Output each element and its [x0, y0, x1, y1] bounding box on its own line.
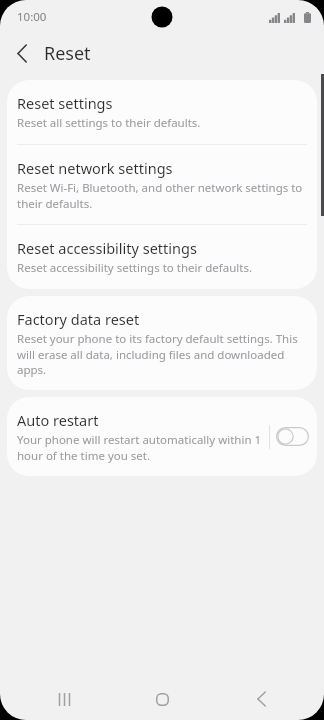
- button[interactable]: Home: [127, 678, 197, 720]
- button[interactable]: Reset accessibility settings: [7, 225, 317, 289]
- staticText: Reset Wi-Fi, Bluetooth, and other networ…: [17, 180, 303, 211]
- button[interactable]: Back: [226, 678, 296, 720]
- staticText: Reset settings: [17, 93, 113, 113]
- button[interactable]: Back: [0, 34, 44, 72]
- button[interactable]: Factory data reset: [7, 296, 317, 390]
- button[interactable]: Recent apps: [29, 678, 99, 720]
- staticText: Reset network settings: [17, 158, 173, 178]
- staticText: 10:00: [17, 9, 47, 25]
- staticText: Auto restart: [17, 410, 99, 430]
- button[interactable]: Auto restart: [276, 427, 309, 446]
- button[interactable]: Reset settings: [7, 80, 317, 144]
- staticText: Reset all settings to their defaults.: [17, 115, 201, 131]
- button[interactable]: Reset network settings: [7, 145, 317, 224]
- staticText: Factory data reset: [17, 309, 140, 329]
- staticText: Reset accessibility settings to their de…: [17, 260, 252, 276]
- button[interactable]: Auto restart: [7, 397, 317, 476]
- staticText: Reset your phone to its factory default …: [17, 331, 303, 377]
- staticText: Reset accessibility settings: [17, 238, 197, 258]
- staticText: Your phone will restart automatically wi…: [17, 432, 264, 463]
- staticText: Reset: [44, 41, 91, 66]
